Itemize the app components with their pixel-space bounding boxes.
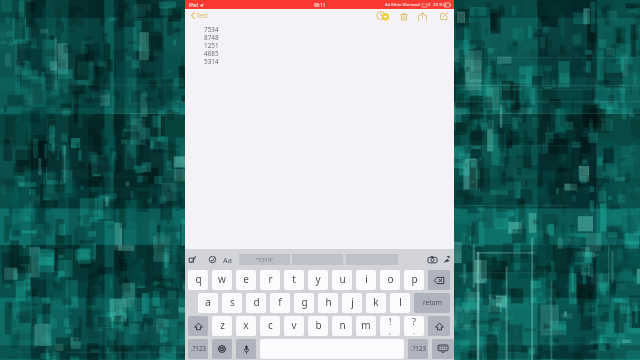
staticText: return — [423, 298, 442, 307]
staticText: p — [411, 272, 418, 286]
staticText: b — [315, 318, 322, 332]
button[interactable]: n — [332, 316, 352, 336]
button[interactable]: o — [380, 270, 400, 290]
button[interactable]: l — [390, 293, 410, 313]
button[interactable]: Share — [418, 12, 427, 22]
staticText: 7534 — [204, 25, 219, 33]
staticText: , — [389, 327, 391, 336]
button[interactable]: q — [188, 270, 208, 290]
staticText: s — [230, 295, 235, 309]
button[interactable]: .?123 — [408, 339, 428, 359]
button[interactable] — [428, 270, 450, 290]
staticText: t — [292, 272, 296, 286]
staticText: . — [413, 327, 415, 336]
button[interactable]: Compose — [440, 12, 448, 20]
staticText: Test — [196, 11, 208, 19]
staticText: .?123 — [411, 344, 426, 352]
staticText: a — [205, 295, 211, 309]
staticText: e — [243, 272, 249, 286]
staticText: w — [218, 272, 226, 286]
button[interactable]: m — [356, 316, 376, 336]
button[interactable]: j — [342, 293, 362, 313]
button[interactable]: ? — [404, 316, 424, 336]
button[interactable]: f — [270, 293, 290, 313]
staticText: 4685 — [204, 49, 219, 57]
staticText: z — [220, 318, 225, 332]
button[interactable] — [212, 339, 232, 359]
staticText: m — [361, 318, 371, 332]
staticText: f — [278, 295, 282, 309]
staticText: k — [373, 295, 379, 309]
button[interactable]: Add recent contact — [376, 11, 389, 21]
button[interactable] — [188, 316, 208, 336]
button[interactable]: Undo — [189, 256, 196, 263]
staticText: 5314 — [204, 57, 219, 65]
button[interactable]: k — [366, 293, 386, 313]
button[interactable]: e — [236, 270, 256, 290]
button[interactable]: Hide keyboard — [443, 256, 450, 263]
button[interactable]: Test — [191, 11, 208, 19]
staticText: ! — [389, 316, 392, 327]
button[interactable]: c — [260, 316, 280, 336]
button[interactable]: Delete — [400, 12, 408, 22]
button[interactable]: s — [222, 293, 242, 313]
button[interactable]: ! — [380, 316, 400, 336]
staticText: x — [243, 318, 249, 332]
button[interactable]: h — [318, 293, 338, 313]
staticText: d — [253, 295, 260, 309]
staticText: Ad Ethio (Geneva) — [385, 2, 420, 8]
button[interactable]: Insert photo — [428, 256, 437, 263]
staticText: 8748 — [204, 33, 219, 41]
button[interactable]: d — [246, 293, 266, 313]
button[interactable]: t — [284, 270, 304, 290]
button[interactable] — [236, 339, 256, 359]
button[interactable]: Text style — [223, 255, 232, 265]
button[interactable]: i — [356, 270, 376, 290]
button[interactable]: .?123 — [188, 339, 208, 359]
button[interactable]: a — [198, 293, 218, 313]
staticText: 23 % — [433, 2, 443, 8]
button[interactable]: g — [294, 293, 314, 313]
staticText: "5314" — [256, 256, 274, 264]
staticText: y — [315, 272, 321, 286]
staticText: h — [325, 295, 332, 309]
staticText: 3 — [428, 2, 431, 8]
button[interactable]: Proofread — [209, 256, 216, 263]
button[interactable]: r — [260, 270, 280, 290]
staticText: v — [291, 318, 297, 332]
staticText: u — [339, 272, 346, 286]
staticText: r — [268, 272, 273, 286]
button[interactable]: w — [212, 270, 232, 290]
button[interactable]: p — [404, 270, 424, 290]
button[interactable]: "5314" — [239, 254, 290, 265]
staticText: ? — [412, 316, 416, 327]
staticText: iPad — [189, 2, 198, 8]
button[interactable]: z — [212, 316, 232, 336]
staticText: n — [339, 318, 346, 332]
button[interactable]: y — [308, 270, 328, 290]
staticText: .?123 — [191, 344, 206, 352]
button[interactable]: b — [308, 316, 328, 336]
button[interactable] — [428, 316, 450, 336]
button[interactable]: u — [332, 270, 352, 290]
button[interactable] — [432, 339, 454, 359]
staticText: l — [399, 295, 402, 309]
staticText: 08:11 — [314, 2, 326, 8]
staticText: 1251 — [204, 41, 219, 49]
staticText: o — [387, 272, 394, 286]
button[interactable]: v — [284, 316, 304, 336]
button[interactable]: return — [414, 293, 450, 313]
staticText: i — [365, 272, 368, 286]
staticText: q — [195, 272, 202, 286]
staticText: g — [301, 295, 308, 309]
button[interactable]: x — [236, 316, 256, 336]
staticText: j — [351, 295, 354, 309]
staticText: Aa — [223, 255, 232, 265]
staticText: c — [268, 318, 273, 332]
